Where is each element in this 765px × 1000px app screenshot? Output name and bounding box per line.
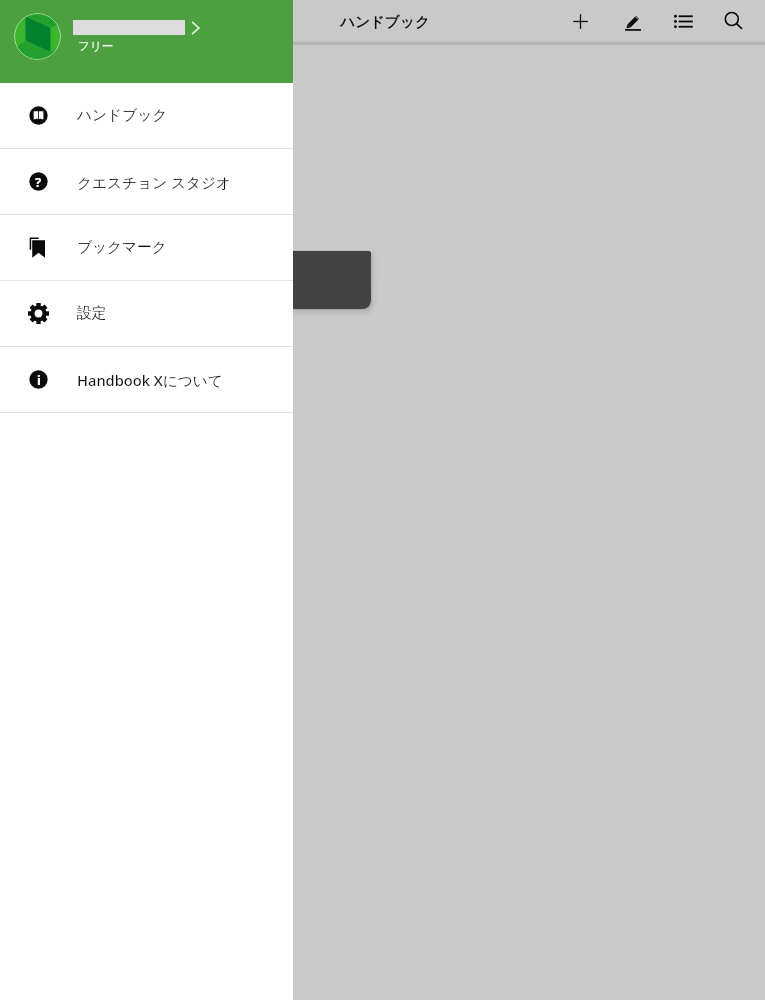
staticText: ハンドブック (340, 13, 430, 31)
staticText: フリー (78, 39, 114, 54)
staticText: Handbook Xについて (77, 370, 223, 390)
staticText: ? (35, 173, 42, 191)
staticText: ハンドブック (77, 106, 168, 125)
button[interactable]: ハンドブック (0, 83, 293, 148)
button[interactable]: Add (558, 0, 608, 43)
button[interactable]: フリー (0, 0, 293, 83)
button[interactable]: ? (0, 149, 293, 214)
button[interactable]: List view (658, 0, 708, 43)
staticText: i (37, 371, 41, 389)
button[interactable]: Edit (608, 0, 658, 43)
button[interactable]: 設定 (0, 281, 293, 346)
button[interactable]: ブックマーク (0, 215, 293, 280)
staticText: ブックマーク (77, 238, 167, 257)
staticText: クエスチョン スタジオ (77, 172, 232, 192)
staticText: 設定 (77, 304, 107, 323)
button[interactable]: Search (708, 0, 758, 43)
button[interactable]: i (0, 347, 293, 412)
